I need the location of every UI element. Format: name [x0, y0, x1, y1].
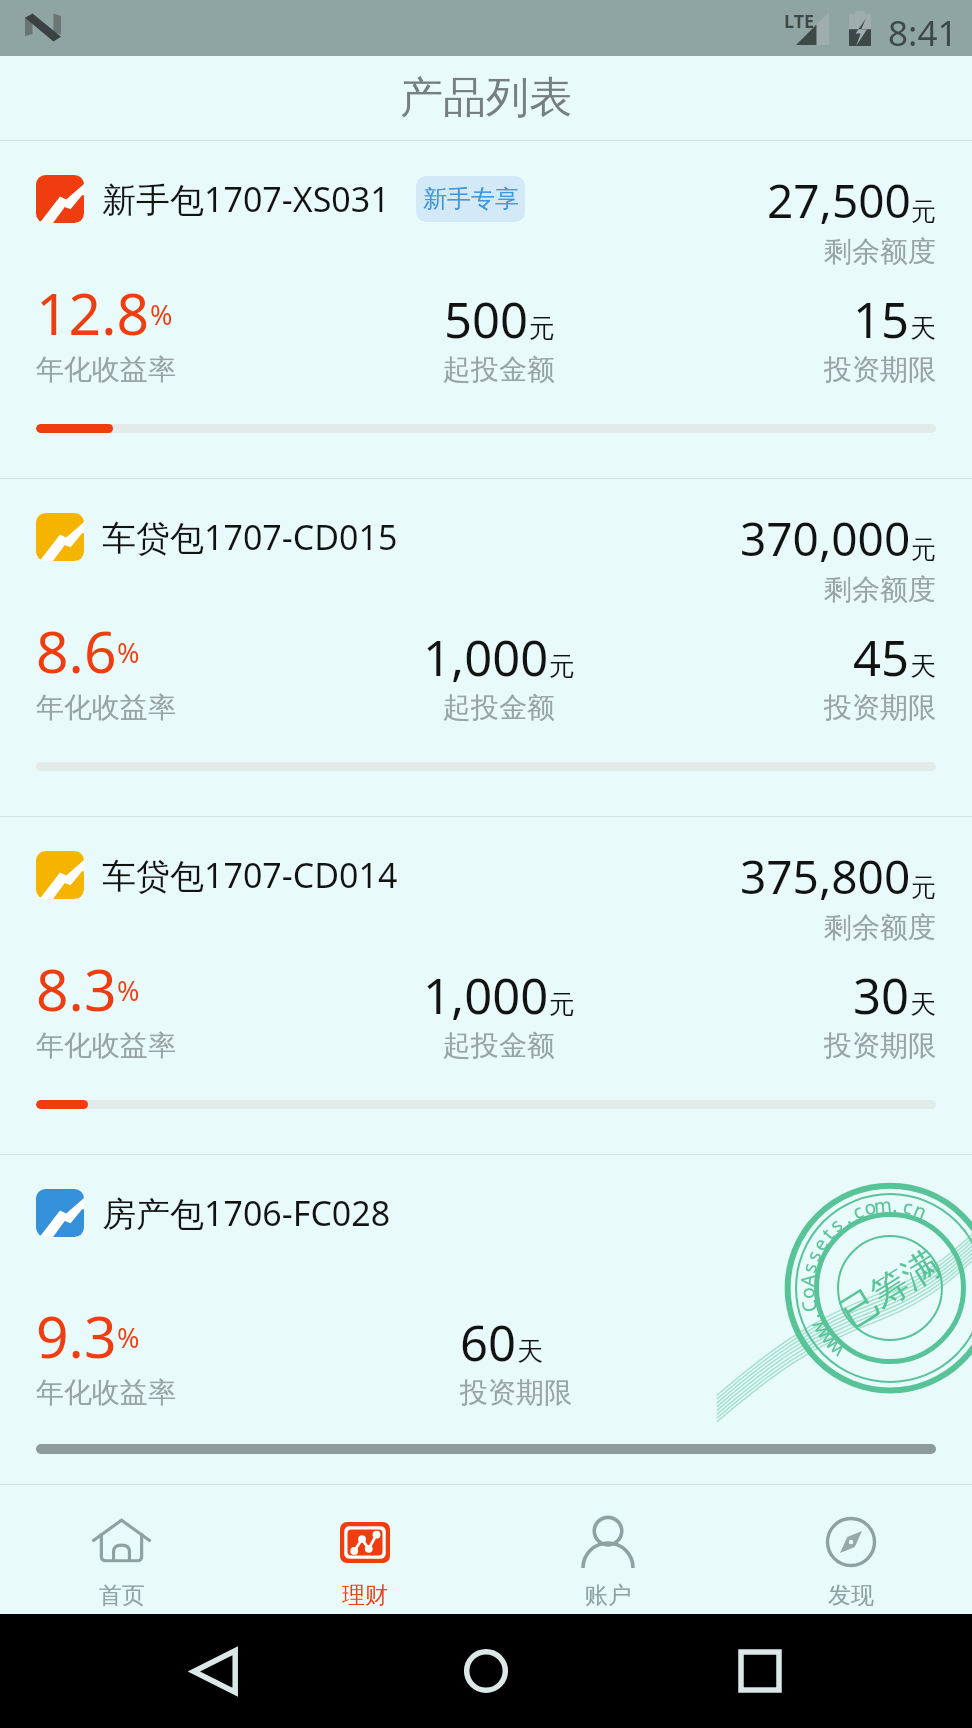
staticText: 8.3	[36, 950, 117, 1016]
staticText: .	[799, 1310, 826, 1325]
staticText: 天	[910, 312, 936, 345]
staticText: 年化收益率	[36, 1028, 176, 1063]
staticText: 元	[549, 650, 575, 683]
staticText: 1,000	[423, 624, 549, 690]
staticText: c	[901, 1193, 916, 1221]
staticText: 起投金额	[443, 352, 555, 387]
staticText: e	[806, 1232, 834, 1256]
button[interactable]: 发现	[729, 1484, 972, 1614]
staticText: 起投金额	[443, 1028, 555, 1063]
staticText: 元	[911, 196, 936, 227]
staticText: o	[861, 1193, 879, 1221]
staticText: 元	[549, 988, 575, 1021]
staticText: 元	[911, 872, 936, 903]
staticText: %	[117, 634, 140, 671]
staticText: 60	[460, 1309, 517, 1375]
staticText: 8:41	[888, 9, 958, 57]
staticText: n	[910, 1196, 931, 1225]
staticText: .	[837, 1205, 856, 1230]
staticText: 45	[853, 624, 910, 690]
staticText: w	[820, 1335, 849, 1364]
staticText: s	[800, 1246, 828, 1265]
staticText: 投资期限	[824, 1028, 936, 1063]
staticText: 首页	[99, 1581, 145, 1610]
staticText: 产品列表	[400, 71, 572, 125]
staticText: 发现	[828, 1581, 874, 1610]
button[interactable]: 房产包1706-FC028	[0, 1155, 972, 1484]
staticText: 车贷包1707-CD015	[102, 514, 398, 560]
staticText: 元	[529, 312, 555, 345]
staticText: A	[794, 1272, 821, 1288]
staticText: 15	[853, 286, 910, 352]
staticText: 新手专享	[423, 184, 519, 214]
staticText: t	[816, 1223, 840, 1245]
staticText: 375,800	[740, 845, 911, 908]
staticText: 天	[910, 988, 936, 1021]
staticText: 投资期限	[460, 1375, 572, 1410]
staticText: %	[117, 972, 140, 1009]
staticText: 9.3	[36, 1297, 117, 1363]
staticText: 剩余额度	[824, 910, 936, 945]
staticText: 天	[910, 650, 936, 683]
staticText: 账户	[585, 1581, 631, 1610]
staticText: 年化收益率	[36, 1375, 176, 1410]
staticText: C	[795, 1296, 823, 1315]
button[interactable]: 车贷包1707-CD015	[0, 479, 972, 816]
staticText: 理财	[342, 1581, 388, 1610]
staticText: 起投金额	[443, 690, 555, 725]
staticText: 1,000	[423, 962, 549, 1028]
staticText: .	[892, 1192, 900, 1218]
staticText: %	[117, 1319, 140, 1356]
staticText: 投资期限	[824, 690, 936, 725]
staticText: 剩余额度	[824, 234, 936, 269]
staticText: 已筹满	[832, 1241, 948, 1336]
staticText: 30	[853, 962, 910, 1028]
staticText: 车贷包1707-CD014	[102, 852, 398, 898]
staticText: s	[796, 1259, 823, 1275]
staticText: 500	[444, 286, 529, 352]
button[interactable]: 账户	[486, 1484, 729, 1614]
button[interactable]: 理财	[243, 1484, 486, 1614]
staticText: 8.6	[36, 612, 117, 678]
button[interactable]: 新手包1707-XS031	[0, 141, 972, 478]
button[interactable]: Home	[438, 1623, 534, 1719]
button[interactable]: 车贷包1707-CD014	[0, 817, 972, 1154]
staticText: 27,500	[767, 169, 911, 232]
staticText: w	[811, 1326, 841, 1354]
staticText: s	[824, 1212, 848, 1238]
staticText: LTE	[784, 9, 815, 34]
staticText: %	[150, 296, 173, 333]
staticText: 年化收益率	[36, 690, 176, 725]
staticText: 天	[517, 1335, 543, 1368]
staticText: 元	[911, 534, 936, 565]
staticText: 投资期限	[824, 352, 936, 387]
staticText: w	[803, 1316, 833, 1342]
staticText: m	[873, 1192, 893, 1219]
staticText: 370,000	[740, 507, 911, 570]
staticText: c	[848, 1197, 868, 1225]
button[interactable]: 首页	[0, 1484, 243, 1614]
button[interactable]: Back	[166, 1623, 262, 1719]
staticText: 房产包1706-FC028	[102, 1190, 391, 1236]
staticText: 12.8	[36, 274, 150, 340]
button[interactable]: Recents	[712, 1623, 808, 1719]
staticText: 剩余额度	[824, 572, 936, 607]
staticText: 新手包1707-XS031	[102, 176, 390, 222]
staticText: o	[794, 1286, 820, 1300]
staticText: 年化收益率	[36, 352, 176, 387]
